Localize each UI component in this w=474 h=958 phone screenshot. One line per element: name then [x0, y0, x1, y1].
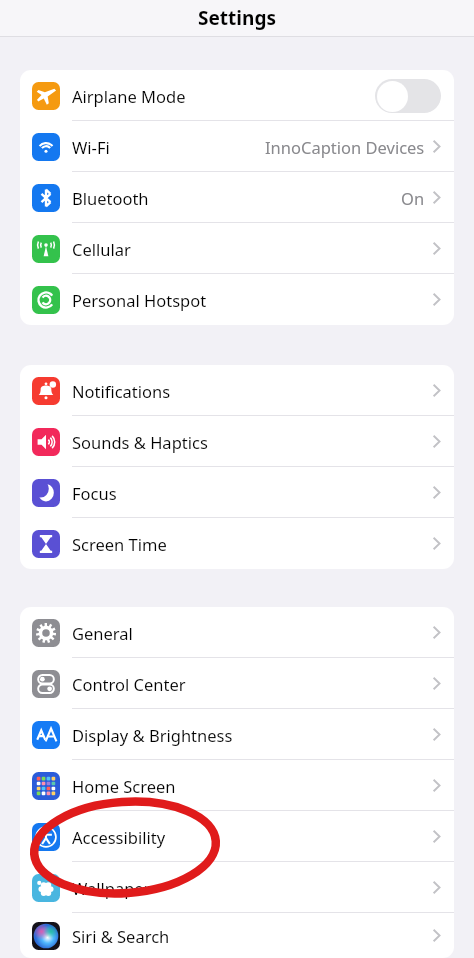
- staticText: Cellular: [72, 238, 131, 260]
- button[interactable]: Control Center: [20, 658, 454, 709]
- staticText: Personal Hotspot: [72, 289, 207, 311]
- button[interactable]: Bluetooth: [20, 172, 454, 223]
- staticText: Screen Time: [72, 533, 167, 555]
- button[interactable]: Wallpaper: [20, 862, 454, 913]
- staticText: General: [72, 622, 133, 644]
- button[interactable]: General: [20, 607, 454, 658]
- staticText: Airplane Mode: [72, 85, 186, 107]
- staticText: Wi-Fi: [72, 136, 110, 158]
- staticText: Display & Brightness: [72, 724, 233, 746]
- staticText: Bluetooth: [72, 187, 149, 209]
- staticText: Notifications: [72, 380, 171, 402]
- button[interactable]: Screen Time: [20, 518, 454, 569]
- staticText: Control Center: [72, 673, 186, 695]
- staticText: Home Screen: [72, 775, 176, 797]
- staticText: InnoCaption Devices: [265, 136, 425, 158]
- staticText: Wallpaper: [72, 877, 151, 899]
- button[interactable]: Focus: [20, 467, 454, 518]
- button[interactable]: Display & Brightness: [20, 709, 454, 760]
- staticText: Sounds & Haptics: [72, 431, 208, 453]
- button[interactable]: Home Screen: [20, 760, 454, 811]
- button[interactable]: Sounds & Haptics: [20, 416, 454, 467]
- staticText: Siri & Search: [72, 925, 170, 947]
- button[interactable]: Airplane Mode: [20, 70, 454, 121]
- button[interactable]: Wi-Fi: [20, 121, 454, 172]
- button[interactable]: Personal Hotspot: [20, 274, 454, 325]
- button[interactable]: Accessibility: [20, 811, 454, 862]
- staticText: Focus: [72, 482, 117, 504]
- staticText: Accessibility: [72, 826, 166, 848]
- button[interactable]: Notifications: [20, 365, 454, 416]
- button[interactable]: Siri & Search: [20, 913, 454, 958]
- button[interactable]: Cellular: [20, 223, 454, 274]
- staticText: On: [401, 187, 425, 209]
- staticText: Settings: [198, 5, 276, 31]
- button[interactable]: Airplane Mode toggle: [375, 79, 441, 113]
